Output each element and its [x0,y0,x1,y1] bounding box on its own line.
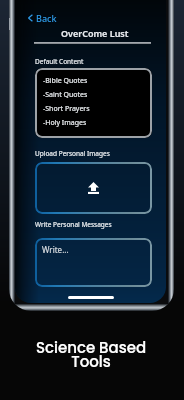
staticText: Write Personal Messages [35,220,112,229]
staticText: Default Content [35,57,84,66]
staticText: Write... [42,244,69,255]
button[interactable]: Upload personal images [35,162,152,214]
staticText: OverCome Lust [61,27,129,39]
staticText: Upload Personal Images [35,149,110,158]
staticText: -Bible Quotes [43,76,88,86]
staticText: -Holy Images [43,118,87,128]
button[interactable]: -Bible Quotes [35,68,152,138]
staticText: -Short Prayers [43,104,90,114]
button[interactable]: Write... [35,238,152,287]
staticText: -Saint Quotes [43,90,88,100]
staticText: Science Based Tools [0,337,183,373]
staticText: Back [36,12,57,24]
button[interactable]: Back [26,10,59,26]
